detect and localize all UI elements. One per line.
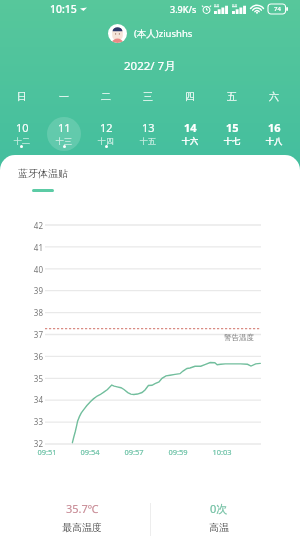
staticText: 日 bbox=[17, 90, 27, 103]
staticText: 34 bbox=[0, 394, 43, 405]
staticText: 2022/ 7月 bbox=[124, 58, 176, 74]
button[interactable]: 13 bbox=[127, 111, 169, 156]
staticText: 3.9K/s bbox=[170, 3, 197, 15]
staticText: 74 bbox=[274, 5, 281, 13]
staticText: 0次 bbox=[210, 501, 228, 516]
button[interactable]: 16 bbox=[253, 111, 295, 156]
staticText: 十二 bbox=[14, 136, 30, 146]
staticText: 一 bbox=[59, 90, 69, 103]
staticText: 10:03 bbox=[207, 447, 237, 457]
staticText: 12 bbox=[100, 120, 113, 135]
staticText: 32 bbox=[0, 438, 43, 449]
staticText: 最高温度 bbox=[62, 521, 102, 534]
staticText: 十七 bbox=[224, 136, 240, 146]
staticText: 09:57 bbox=[119, 447, 149, 457]
staticText: 38 bbox=[0, 307, 43, 318]
staticText: 09:59 bbox=[163, 447, 193, 457]
staticText: 二 bbox=[101, 90, 111, 103]
staticText: 09:54 bbox=[75, 447, 105, 457]
staticText: 35 bbox=[0, 373, 43, 384]
staticText: (本人)ziushhs bbox=[134, 27, 193, 40]
staticText: 15 bbox=[226, 120, 239, 135]
staticText: 41 bbox=[0, 242, 43, 253]
staticText: 十四 bbox=[98, 136, 114, 146]
staticText: 10 bbox=[16, 120, 29, 135]
button[interactable]: 35.7℃ bbox=[13, 501, 150, 534]
button[interactable]: 11 bbox=[43, 111, 85, 156]
staticText: 33 bbox=[0, 416, 43, 427]
button[interactable]: 0次 bbox=[150, 501, 288, 534]
staticText: 警告温度 bbox=[224, 333, 254, 342]
staticText: 40 bbox=[0, 264, 43, 275]
staticText: 十六 bbox=[182, 136, 198, 146]
staticText: 42 bbox=[0, 220, 43, 231]
button[interactable]: 15 bbox=[211, 111, 253, 156]
staticText: 16 bbox=[268, 120, 281, 135]
staticText: 10:15 bbox=[50, 2, 77, 16]
staticText: 五 bbox=[227, 90, 237, 103]
staticText: 13 bbox=[142, 120, 155, 135]
staticText: 三 bbox=[143, 90, 153, 103]
button[interactable]: 蓝牙体温贴 bbox=[18, 167, 68, 192]
button[interactable]: 10 bbox=[0, 111, 43, 156]
staticText: 十五 bbox=[140, 136, 156, 146]
staticText: 37 bbox=[0, 329, 43, 340]
staticText: 六 bbox=[269, 90, 279, 103]
staticText: 36 bbox=[0, 351, 43, 362]
button[interactable]: (本人)ziushhs bbox=[0, 18, 300, 49]
staticText: 十三 bbox=[56, 136, 72, 146]
staticText: 14 bbox=[184, 120, 197, 135]
button[interactable]: 14 bbox=[169, 111, 211, 156]
staticText: 39 bbox=[0, 285, 43, 296]
staticText: 十八 bbox=[266, 136, 282, 146]
staticText: 四 bbox=[185, 90, 195, 103]
staticText: 09:51 bbox=[32, 447, 62, 457]
staticText: 蓝牙体温贴 bbox=[18, 167, 68, 180]
staticText: 11 bbox=[58, 120, 71, 135]
staticText: 高温 bbox=[209, 521, 229, 534]
button[interactable]: 12 bbox=[85, 111, 127, 156]
staticText: 35.7℃ bbox=[66, 501, 99, 516]
